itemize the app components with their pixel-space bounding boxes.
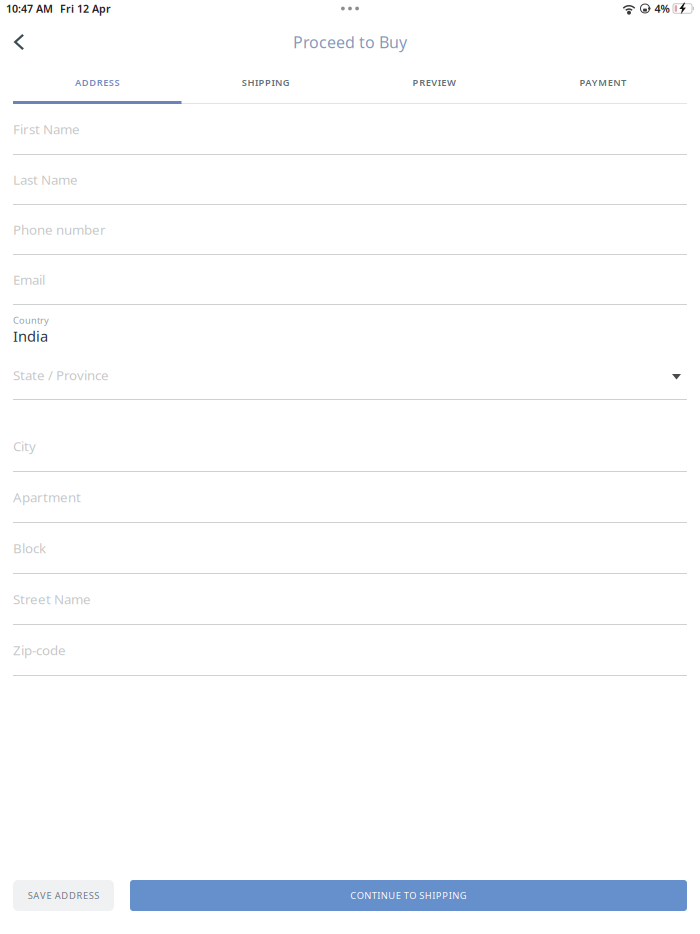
staticText: Last Name (13, 171, 78, 188)
button[interactable]: PREVIEW (350, 67, 518, 101)
button[interactable]: Email (13, 255, 687, 305)
button[interactable]: First Name (13, 104, 687, 155)
staticText: Street Name (13, 590, 91, 608)
staticText: Country (13, 314, 49, 326)
button[interactable]: State / Province (13, 351, 687, 400)
staticText: City (13, 437, 36, 455)
staticText: Apartment (13, 488, 81, 506)
staticText: Zip-code (13, 641, 66, 659)
button[interactable]: Back (4, 27, 34, 57)
button[interactable]: Country (13, 305, 687, 351)
button[interactable]: ADDRESS (13, 67, 181, 101)
staticText: SAVE ADDRESS (28, 889, 99, 902)
staticText: CONTINUE TO SHIPPING (350, 889, 467, 902)
button[interactable]: Block (13, 523, 687, 574)
button[interactable]: PAYMENT (518, 67, 687, 101)
staticText: Block (13, 539, 46, 557)
staticText: Fri 12 Apr (60, 1, 111, 16)
staticText: PREVIEW (413, 76, 456, 89)
staticText: 4% (654, 1, 669, 16)
button[interactable]: CONTINUE TO SHIPPING (130, 880, 687, 911)
staticText: ADDRESS (75, 76, 119, 89)
button[interactable]: Last Name (13, 155, 687, 205)
button[interactable]: Street Name (13, 574, 687, 625)
staticText: Proceed to Buy (293, 31, 407, 53)
staticText: PAYMENT (580, 76, 626, 89)
staticText: Email (13, 271, 45, 288)
staticText: 10:47 AM (6, 1, 53, 16)
button[interactable]: SAVE ADDRESS (13, 880, 114, 911)
button[interactable]: Phone number (13, 205, 687, 255)
staticText: Phone number (13, 221, 106, 238)
button[interactable]: Zip-code (13, 625, 687, 676)
staticText: SHIPPING (242, 76, 290, 89)
button[interactable]: Apartment (13, 472, 687, 523)
staticText: First Name (13, 120, 80, 138)
staticText: State / Province (13, 366, 109, 384)
staticText: India (13, 326, 48, 346)
button[interactable]: SHIPPING (181, 67, 350, 101)
button[interactable]: City (13, 421, 687, 472)
